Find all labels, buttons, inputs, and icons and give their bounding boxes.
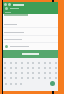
button[interactable]: Menu [3,2,58,14]
button[interactable]: Send [50,81,55,86]
other: Menu [4,3,7,6]
button[interactable] [3,50,58,58]
